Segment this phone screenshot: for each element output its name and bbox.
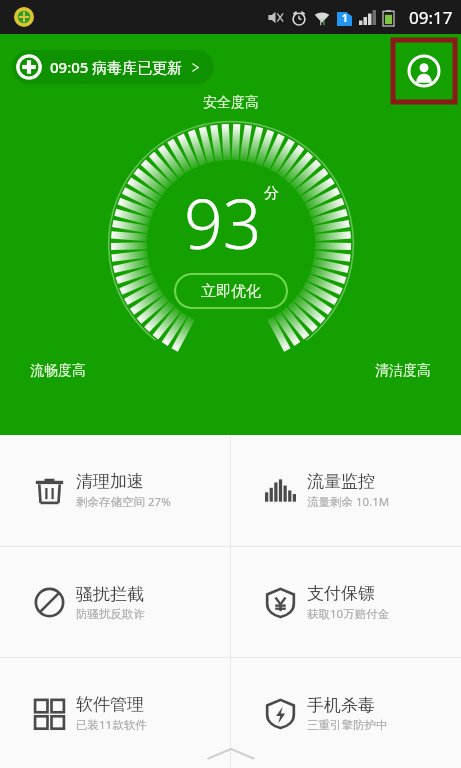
staticText: 防骚扰反欺诈 bbox=[76, 607, 145, 621]
staticText: 手机杀毒 bbox=[307, 695, 375, 716]
staticText: 立即优化 bbox=[201, 282, 261, 301]
button[interactable]: Expand bbox=[204, 744, 258, 762]
staticText: 流畅度高 bbox=[30, 362, 86, 380]
staticText: 清理加速 bbox=[76, 471, 144, 492]
staticText: 三重引擎防护中 bbox=[307, 718, 388, 732]
button[interactable]: 清理加速 bbox=[0, 435, 230, 546]
button[interactable]: 骚扰拦截 bbox=[0, 547, 230, 657]
button[interactable]: 支付保镖 bbox=[231, 547, 461, 657]
button[interactable]: 手机杀毒 bbox=[231, 658, 461, 768]
staticText: 骚扰拦截 bbox=[76, 584, 144, 605]
staticText: 流量监控 bbox=[307, 471, 375, 492]
staticText: 清洁度高 bbox=[375, 362, 431, 380]
button[interactable]: 软件管理 bbox=[0, 658, 230, 768]
staticText: 93 bbox=[184, 176, 262, 269]
staticText: 支付保镖 bbox=[307, 583, 375, 604]
staticText: 流量剩余 10.1M bbox=[307, 494, 390, 510]
button[interactable]: 立即优化 bbox=[174, 273, 288, 309]
staticText: 分 bbox=[264, 184, 279, 203]
button[interactable]: 09:05 病毒库已更新 bbox=[12, 50, 214, 84]
button[interactable]: Account bbox=[393, 40, 455, 102]
staticText: 09:05 病毒库已更新 bbox=[50, 57, 183, 77]
button[interactable]: 流量监控 bbox=[231, 435, 461, 546]
staticText: 安全度高 bbox=[203, 94, 259, 112]
staticText: 1 bbox=[342, 11, 348, 25]
staticText: 获取10万赔付金 bbox=[307, 606, 390, 622]
staticText: 已装11款软件 bbox=[76, 717, 147, 733]
staticText: 09:17 bbox=[409, 6, 453, 29]
staticText: 软件管理 bbox=[76, 694, 144, 715]
staticText: 剩余存储空间 27% bbox=[76, 494, 171, 510]
